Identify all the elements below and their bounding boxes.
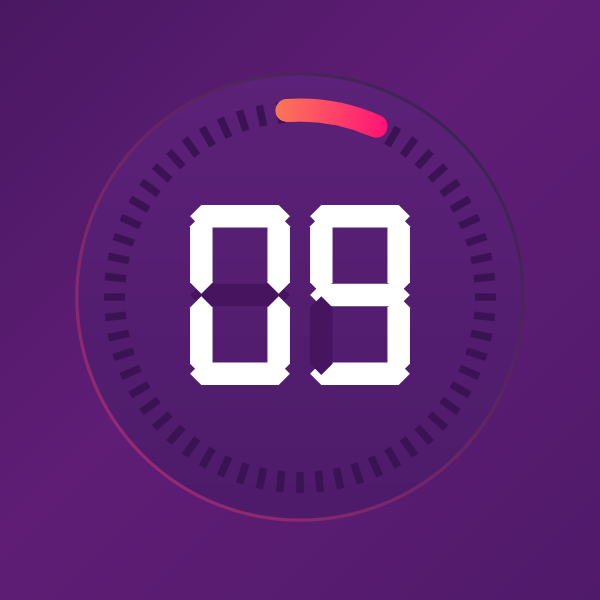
button[interactable]: Timer 09 minutes remaining [0,0,600,600]
